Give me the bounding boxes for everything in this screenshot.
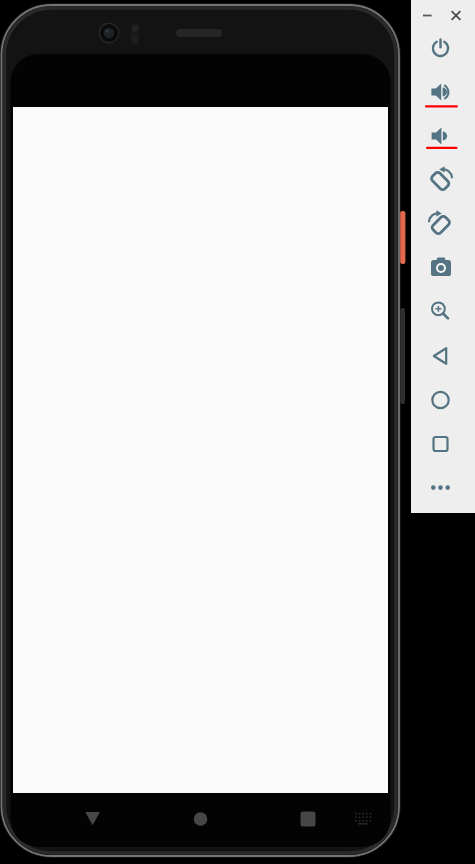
button[interactable]: [424, 252, 457, 284]
button[interactable]: [447, 6, 465, 24]
button[interactable]: [424, 340, 457, 372]
button[interactable]: [424, 384, 457, 416]
button[interactable]: [424, 32, 457, 64]
button[interactable]: [74, 800, 112, 838]
button[interactable]: [182, 800, 220, 838]
button[interactable]: [424, 164, 457, 196]
button[interactable]: [424, 208, 457, 240]
button[interactable]: [289, 800, 327, 838]
button[interactable]: [419, 6, 437, 24]
button[interactable]: [424, 120, 457, 152]
button[interactable]: [346, 802, 380, 832]
button[interactable]: [424, 296, 457, 328]
button[interactable]: [424, 428, 457, 460]
button[interactable]: [424, 472, 457, 504]
button[interactable]: [424, 76, 457, 108]
